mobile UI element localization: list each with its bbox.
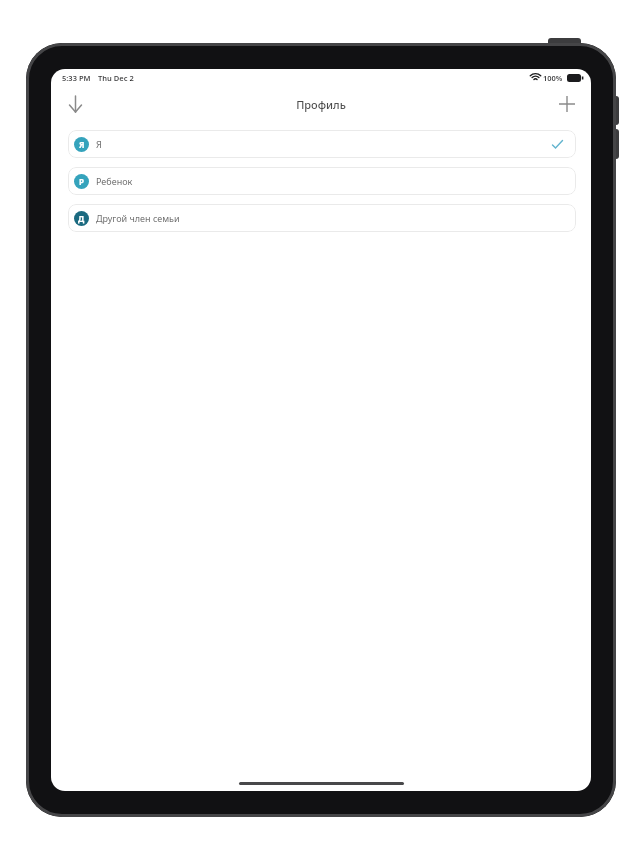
staticText: Профиль bbox=[296, 97, 346, 112]
staticText: Я bbox=[96, 138, 102, 150]
staticText: Thu Dec 2 bbox=[98, 73, 134, 83]
button[interactable]: Р bbox=[68, 167, 576, 195]
staticText: 5:33 PM bbox=[62, 73, 91, 83]
staticText: Ребенок bbox=[96, 175, 133, 187]
staticText: Другой член семьи bbox=[96, 212, 180, 224]
staticText: Д bbox=[78, 213, 85, 224]
staticText: Я bbox=[79, 139, 85, 150]
staticText: Р bbox=[79, 176, 84, 187]
button[interactable] bbox=[551, 88, 583, 120]
staticText: 100% bbox=[543, 73, 563, 83]
button[interactable]: Я bbox=[68, 130, 576, 158]
button[interactable] bbox=[59, 88, 91, 120]
button[interactable]: Д bbox=[68, 204, 576, 232]
